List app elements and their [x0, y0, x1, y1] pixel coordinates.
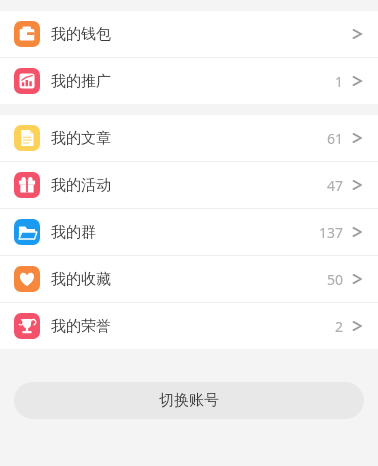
staticText: 我的活动	[51, 176, 111, 195]
staticText: 50	[327, 270, 344, 289]
staticText: 我的收藏	[51, 270, 111, 289]
staticText: 我的群	[51, 223, 96, 242]
button[interactable]: 切换账号	[14, 382, 364, 419]
button[interactable]: 我的活动	[0, 162, 378, 208]
staticText: 47	[327, 176, 344, 195]
staticText: 切换账号	[159, 391, 219, 410]
button[interactable]: 我的群	[0, 209, 378, 255]
staticText: 61	[327, 129, 344, 148]
button[interactable]: 我的钱包	[0, 11, 378, 57]
staticText: 我的文章	[51, 129, 111, 148]
staticText: 2	[335, 317, 344, 336]
button[interactable]: 我的推广	[0, 58, 378, 104]
staticText: 我的推广	[51, 72, 111, 91]
staticText: 我的荣誉	[51, 317, 111, 336]
staticText: 1	[335, 72, 344, 91]
staticText: 137	[319, 223, 344, 242]
staticText: 我的钱包	[51, 25, 111, 44]
button[interactable]: 我的收藏	[0, 256, 378, 302]
button[interactable]: 我的荣誉	[0, 303, 378, 349]
button[interactable]: 我的文章	[0, 115, 378, 161]
